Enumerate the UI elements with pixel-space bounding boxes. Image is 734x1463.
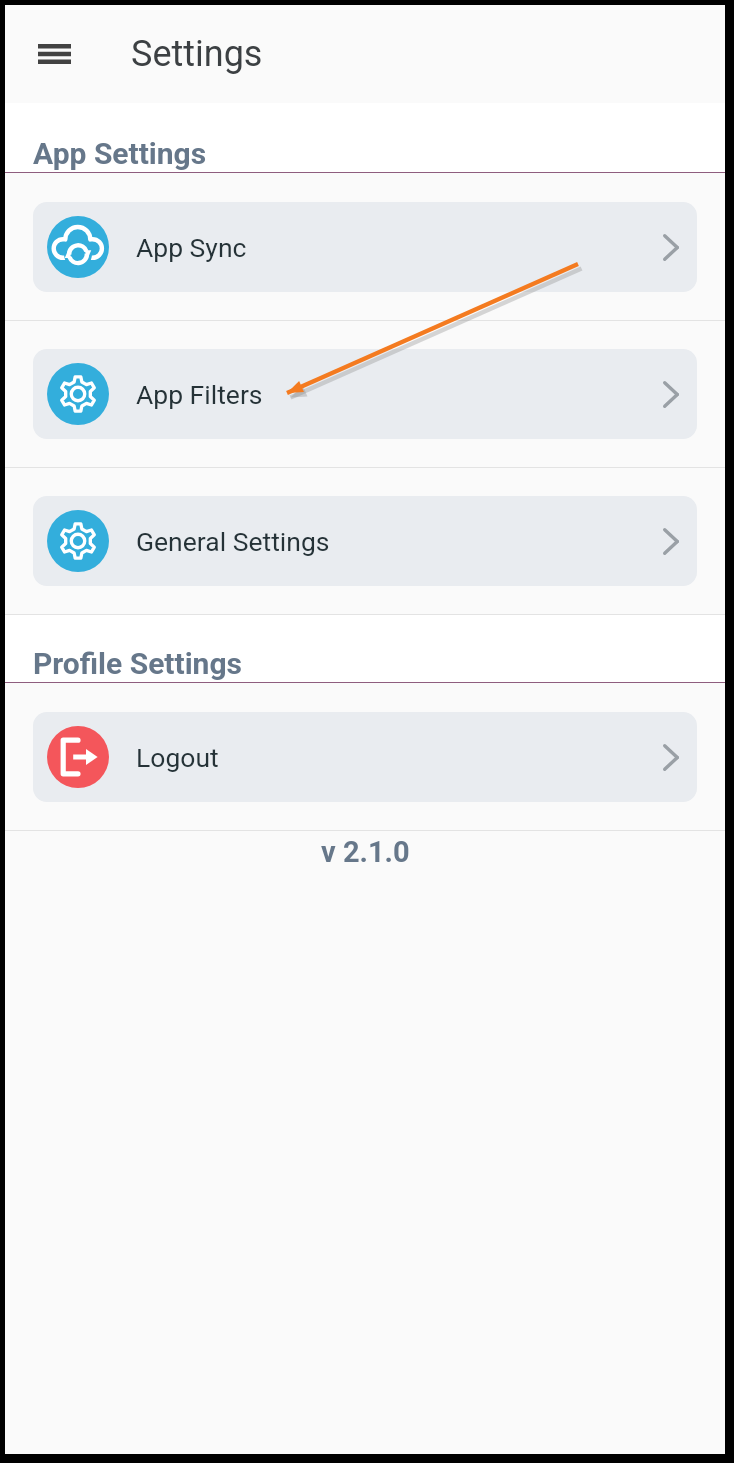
staticText: General Settings: [136, 526, 330, 557]
staticText: v 2.1.0: [321, 835, 410, 869]
button[interactable]: General Settings: [33, 496, 697, 586]
staticText: App Settings: [33, 136, 207, 171]
staticText: App Sync: [136, 232, 247, 263]
button[interactable]: Logout: [33, 712, 697, 802]
staticText: Settings: [131, 33, 263, 75]
staticText: App Filters: [136, 379, 263, 410]
button[interactable]: Menu: [27, 27, 81, 81]
staticText: Logout: [136, 742, 219, 773]
button[interactable]: App Filters: [33, 349, 697, 439]
staticText: Profile Settings: [33, 646, 242, 681]
button[interactable]: App Sync: [33, 202, 697, 292]
